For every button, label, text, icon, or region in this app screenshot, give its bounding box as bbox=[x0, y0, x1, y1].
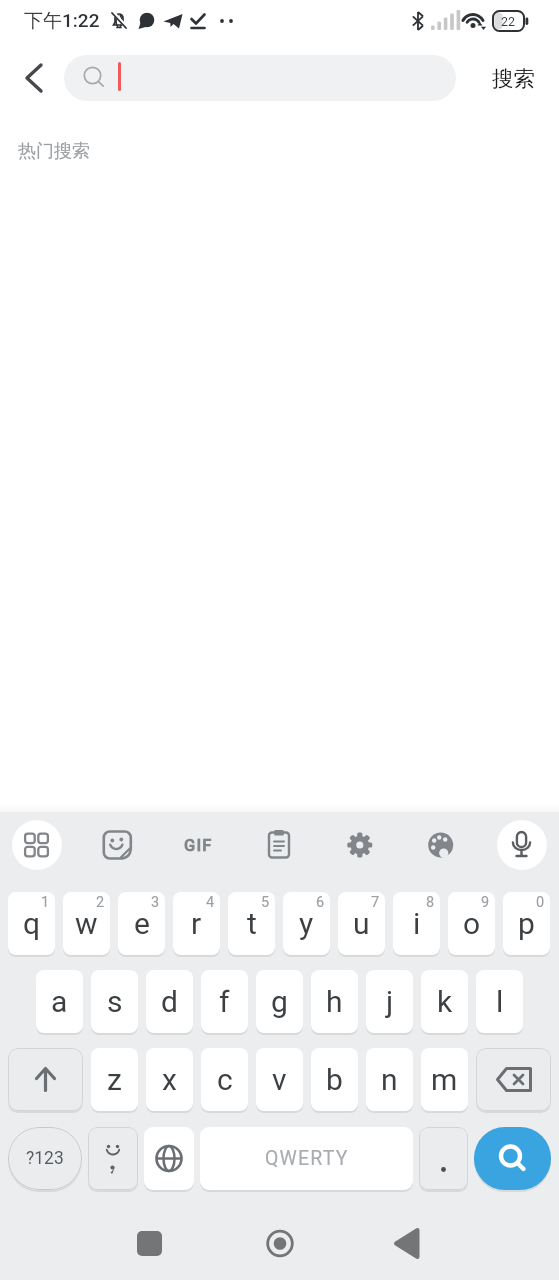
button[interactable] bbox=[14, 58, 54, 98]
staticText: ?123 bbox=[26, 1148, 64, 1169]
staticText: t bbox=[247, 906, 257, 941]
button[interactable] bbox=[125, 1219, 175, 1269]
staticText: i bbox=[413, 906, 421, 941]
staticText: 7 bbox=[371, 894, 380, 911]
staticText: z bbox=[107, 1062, 122, 1097]
button[interactable] bbox=[476, 1048, 551, 1111]
staticText: k bbox=[437, 984, 453, 1019]
staticText: y bbox=[299, 906, 314, 941]
staticText: 0 bbox=[536, 894, 545, 911]
button[interactable]: c bbox=[201, 1048, 248, 1111]
staticText: s bbox=[107, 984, 123, 1019]
staticText: b bbox=[326, 1062, 343, 1097]
staticText: v bbox=[272, 1062, 287, 1097]
staticText: 9 bbox=[481, 894, 490, 911]
button[interactable]: s bbox=[91, 970, 138, 1033]
button[interactable] bbox=[255, 1219, 305, 1269]
staticText: 热门搜索 bbox=[18, 140, 90, 163]
button[interactable]: l bbox=[476, 970, 523, 1033]
button[interactable] bbox=[88, 1127, 138, 1190]
button[interactable]: QWERTY bbox=[200, 1127, 413, 1190]
staticText: GIF bbox=[184, 836, 213, 855]
staticText: c bbox=[217, 1062, 233, 1097]
button[interactable]: e bbox=[118, 892, 165, 955]
staticText: 22 bbox=[501, 14, 516, 29]
button[interactable] bbox=[144, 1127, 194, 1190]
button[interactable]: g bbox=[256, 970, 303, 1033]
staticText: h bbox=[326, 984, 343, 1019]
button[interactable] bbox=[417, 821, 465, 869]
button[interactable]: h bbox=[311, 970, 358, 1033]
button[interactable]: a bbox=[36, 970, 83, 1033]
staticText: d bbox=[161, 984, 178, 1019]
staticText: 6 bbox=[316, 894, 325, 911]
button[interactable]: y bbox=[283, 892, 330, 955]
button[interactable]: z bbox=[91, 1048, 138, 1111]
button[interactable]: b bbox=[311, 1048, 358, 1111]
staticText: e bbox=[134, 906, 150, 941]
button[interactable] bbox=[93, 821, 141, 869]
button[interactable]: n bbox=[366, 1048, 413, 1111]
button[interactable] bbox=[174, 821, 222, 869]
button[interactable]: 搜索 bbox=[478, 55, 548, 101]
button[interactable]: u bbox=[338, 892, 385, 955]
button[interactable] bbox=[382, 1219, 432, 1269]
button[interactable] bbox=[336, 821, 384, 869]
staticText: f bbox=[219, 984, 230, 1019]
button[interactable] bbox=[497, 820, 547, 870]
staticText: l bbox=[496, 984, 504, 1019]
staticText: QWERTY bbox=[265, 1147, 349, 1170]
button[interactable]: m bbox=[421, 1048, 468, 1111]
staticText: o bbox=[463, 906, 481, 941]
staticText: 1 bbox=[41, 894, 50, 911]
staticText: 8 bbox=[426, 894, 435, 911]
button[interactable] bbox=[255, 821, 303, 869]
button[interactable]: x bbox=[146, 1048, 193, 1111]
staticText: 4 bbox=[206, 894, 215, 911]
staticText: x bbox=[162, 1062, 177, 1097]
staticText: 3 bbox=[151, 894, 160, 911]
button[interactable] bbox=[419, 1127, 468, 1190]
staticText: 5 bbox=[261, 894, 270, 911]
button[interactable] bbox=[8, 1048, 83, 1111]
button[interactable]: r bbox=[173, 892, 220, 955]
button[interactable]: p bbox=[503, 892, 550, 955]
staticText: g bbox=[271, 984, 288, 1019]
button[interactable] bbox=[64, 55, 456, 101]
button[interactable]: f bbox=[201, 970, 248, 1033]
staticText: a bbox=[51, 984, 68, 1019]
staticText: q bbox=[23, 906, 41, 941]
staticText: w bbox=[75, 906, 98, 941]
button[interactable]: k bbox=[421, 970, 468, 1033]
staticText: 2 bbox=[96, 894, 105, 911]
button[interactable]: w bbox=[63, 892, 110, 955]
button[interactable]: d bbox=[146, 970, 193, 1033]
button[interactable]: q bbox=[8, 892, 55, 955]
staticText: m bbox=[431, 1062, 458, 1097]
button[interactable]: ?123 bbox=[8, 1127, 82, 1190]
button[interactable]: t bbox=[228, 892, 275, 955]
staticText: r bbox=[191, 906, 202, 941]
staticText: p bbox=[518, 906, 535, 941]
button[interactable] bbox=[474, 1127, 551, 1190]
button[interactable]: v bbox=[256, 1048, 303, 1111]
staticText: 搜索 bbox=[492, 65, 535, 92]
button[interactable]: o bbox=[448, 892, 495, 955]
staticText: j bbox=[386, 984, 394, 1019]
button[interactable]: i bbox=[393, 892, 440, 955]
staticText: u bbox=[353, 906, 370, 941]
staticText: n bbox=[381, 1062, 398, 1097]
button[interactable] bbox=[12, 820, 62, 870]
staticText: 下午1:22 bbox=[24, 9, 100, 33]
button[interactable]: j bbox=[366, 970, 413, 1033]
